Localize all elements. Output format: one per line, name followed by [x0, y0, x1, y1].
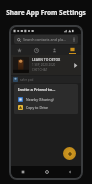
staticText: 1 SEP, 2020 2020	[32, 63, 56, 67]
button[interactable]: Play	[72, 62, 79, 69]
other: Search	[17, 38, 21, 42]
button[interactable]: safer pod	[11, 76, 81, 83]
button[interactable]: Recents	[11, 166, 35, 178]
staticText: LEARN TO DETOX	[32, 57, 61, 62]
button[interactable]: Library	[63, 45, 81, 55]
staticText: Search contacts and pla...	[23, 37, 66, 42]
button[interactable]: Create	[63, 147, 76, 160]
button[interactable]: Home	[35, 166, 58, 178]
staticText: CHIT CHAT	[32, 68, 48, 72]
button[interactable]: LEARN TO DETOX	[11, 55, 81, 75]
staticText: Invite a Friend to...	[18, 87, 56, 93]
button[interactable]: Recents	[28, 45, 45, 55]
staticText: Nearby (Sharing)	[26, 97, 54, 102]
button[interactable]: Back	[58, 166, 81, 178]
button[interactable]: Search	[14, 35, 78, 44]
other: More options	[73, 37, 75, 42]
staticText: Share App From Settings	[6, 8, 86, 17]
button[interactable]: Nearby (Sharing)	[18, 97, 75, 102]
staticText: Copy to Drive	[26, 105, 49, 110]
staticText: safer pod	[20, 78, 34, 82]
button[interactable]: Contacts	[45, 45, 63, 55]
button[interactable]: Favorites	[11, 45, 28, 55]
button[interactable]: Copy to Drive	[18, 105, 75, 110]
